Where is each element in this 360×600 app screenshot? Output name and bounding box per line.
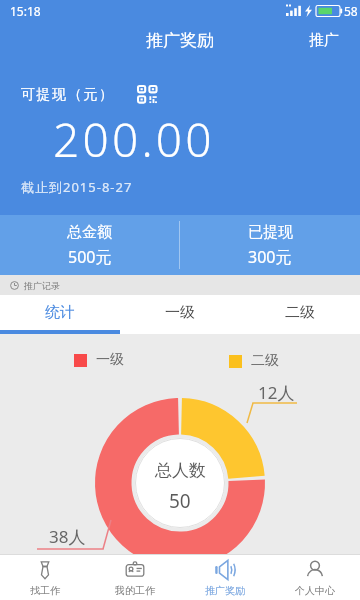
- staticText: 一级: [96, 351, 124, 369]
- staticText: 推广: [309, 31, 339, 50]
- staticText: 我的工作: [115, 584, 155, 597]
- staticText: 统计: [45, 303, 75, 322]
- staticText: 总金额: [67, 223, 112, 242]
- button[interactable]: 二级: [240, 295, 360, 330]
- button[interactable]: 已提现: [180, 215, 360, 275]
- staticText: 200.00: [53, 108, 215, 171]
- button[interactable]: 推广奖励: [180, 555, 270, 600]
- staticText: 15:18: [10, 3, 41, 19]
- button[interactable]: 我的工作: [90, 555, 180, 600]
- button[interactable]: 一级: [120, 295, 240, 330]
- staticText: 58: [344, 3, 358, 19]
- staticText: 推广奖励: [205, 584, 245, 597]
- staticText: 推广记录: [24, 280, 60, 291]
- button[interactable]: 总金额: [0, 215, 179, 275]
- staticText: 二级: [285, 303, 315, 322]
- button[interactable]: 扫一扫二维码: [137, 85, 158, 104]
- button[interactable]: 统计: [0, 295, 120, 330]
- staticText: 一级: [165, 303, 195, 322]
- staticText: 38人: [49, 525, 86, 548]
- staticText: 截止到2015-8-27: [21, 178, 133, 196]
- staticText: 可提现（元）: [21, 86, 115, 104]
- staticText: 推广奖励: [146, 30, 214, 51]
- staticText: 二级: [251, 352, 279, 370]
- staticText: 总人数: [155, 460, 206, 481]
- staticText: 已提现: [248, 223, 293, 242]
- button[interactable]: 推广记录: [0, 275, 360, 295]
- staticText: 个人中心: [295, 584, 335, 597]
- staticText: 找工作: [30, 584, 60, 597]
- staticText: 500元: [68, 246, 112, 268]
- staticText: 12人: [258, 381, 295, 404]
- button[interactable]: 个人中心: [270, 555, 360, 600]
- staticText: 50: [169, 488, 191, 514]
- staticText: 300元: [248, 246, 292, 268]
- button[interactable]: 推广: [288, 23, 360, 58]
- button[interactable]: 找工作: [0, 555, 90, 600]
